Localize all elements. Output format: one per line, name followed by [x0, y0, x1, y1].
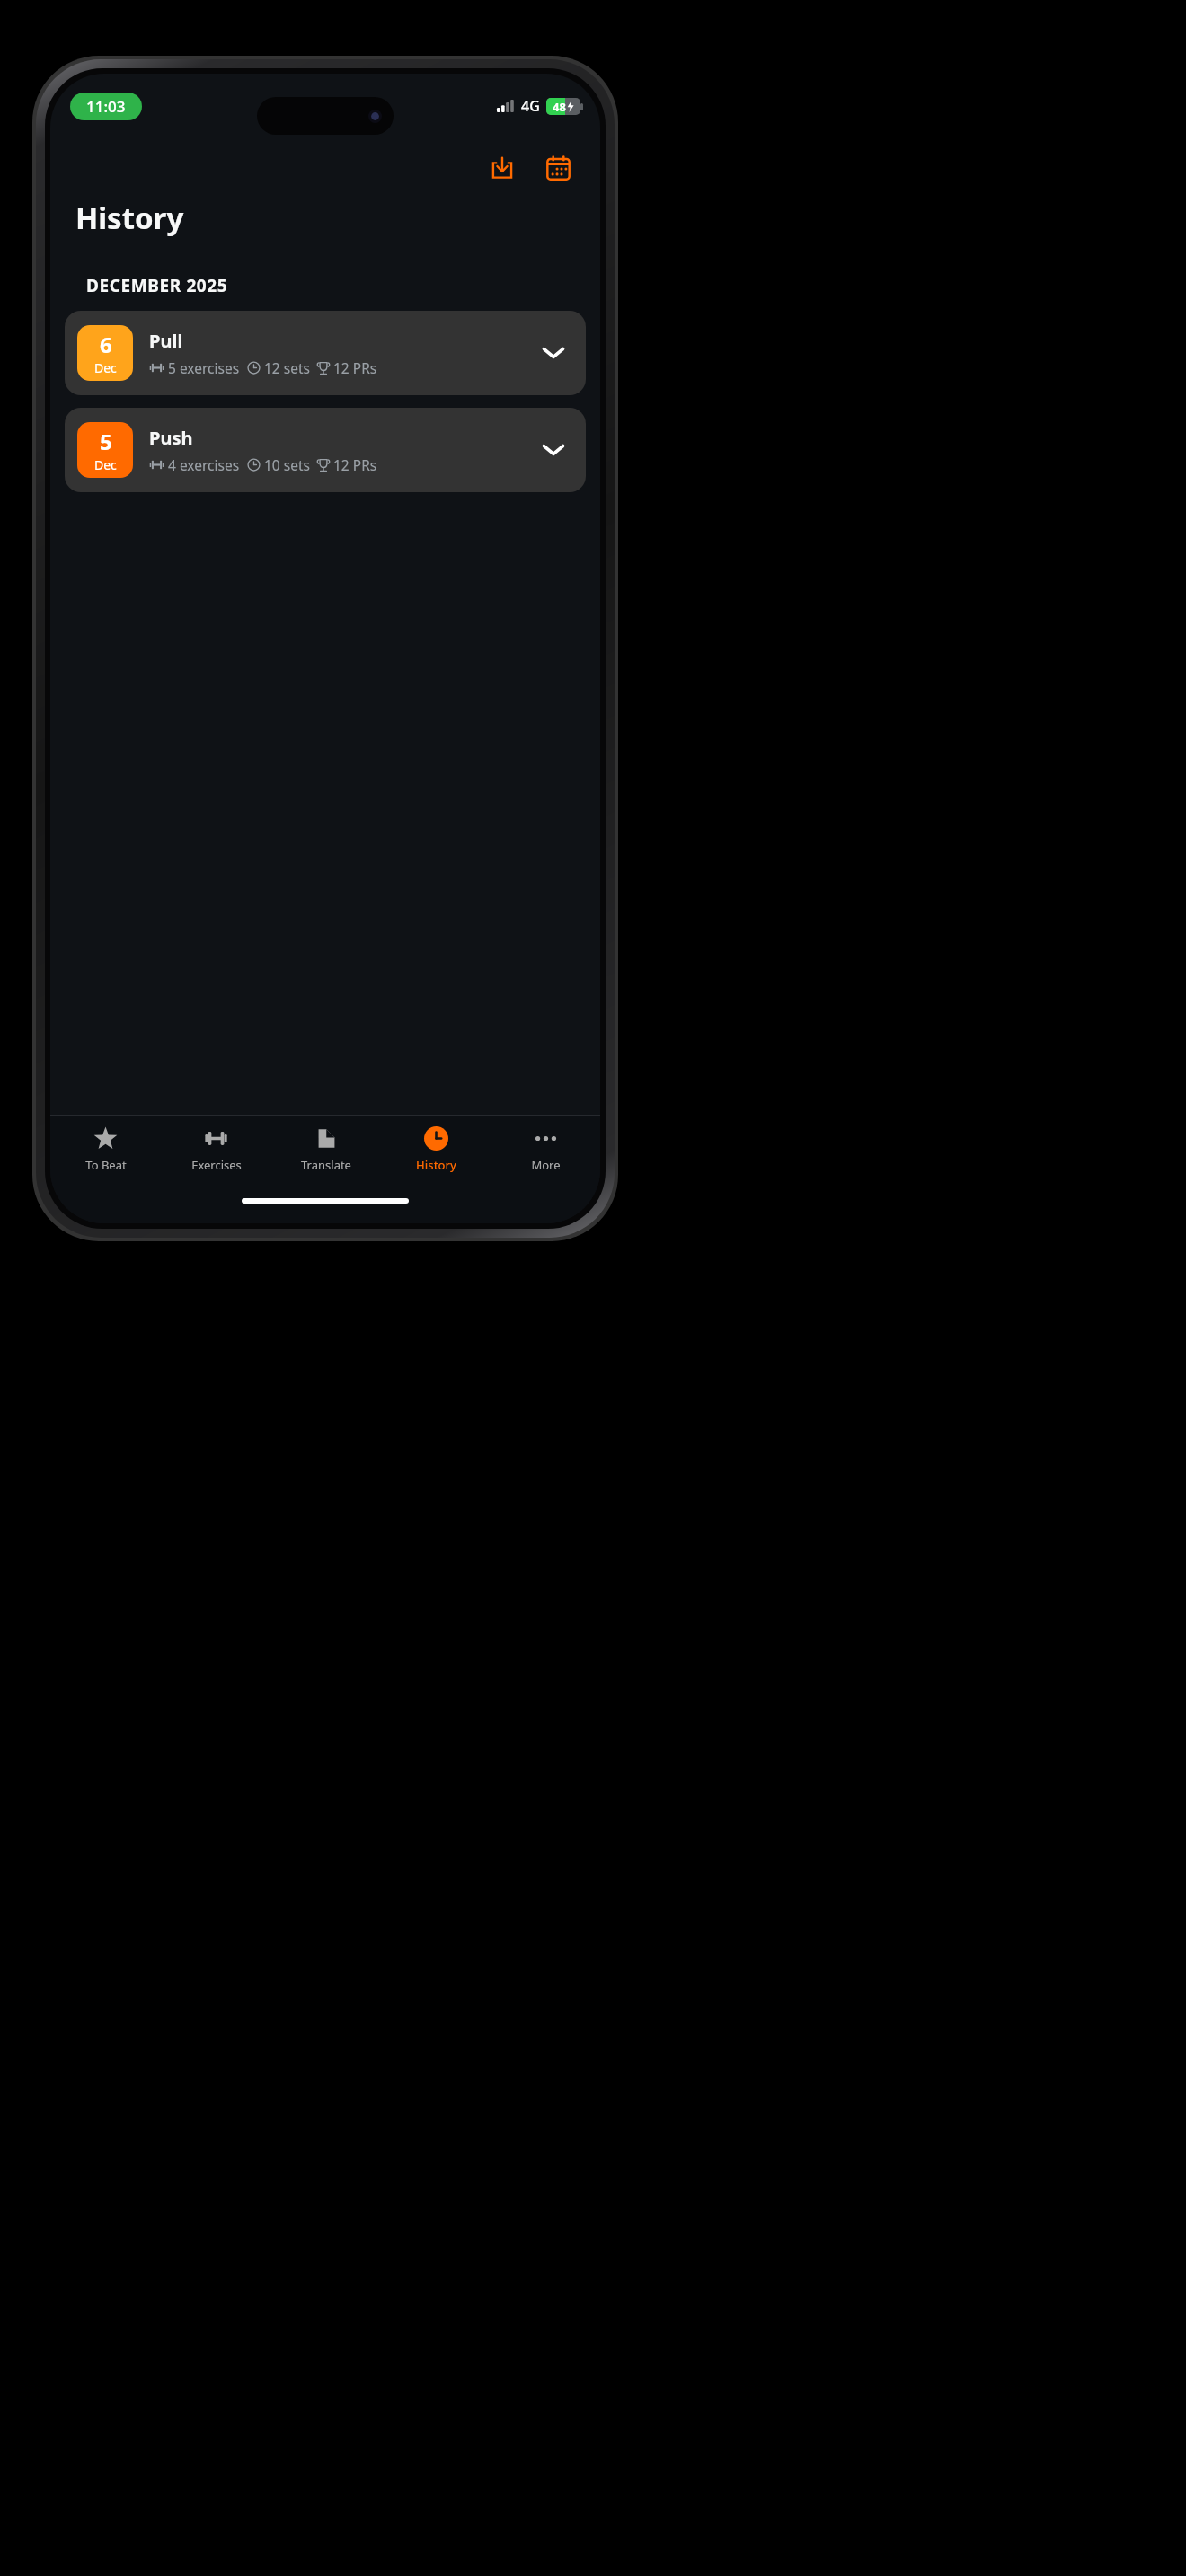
staticText: 5 exercises [168, 358, 240, 377]
staticText: 4G [521, 96, 540, 116]
staticText: History [416, 1157, 456, 1173]
button[interactable]: Translate [271, 1116, 381, 1191]
staticText: 5 [100, 427, 112, 456]
staticText: 48 [553, 99, 566, 115]
staticText: 4 exercises [168, 455, 240, 474]
staticText: Dec [94, 456, 117, 473]
staticText: 12 PRs [333, 358, 377, 377]
staticText: 10 sets [264, 455, 310, 474]
staticText: History [75, 198, 184, 238]
button[interactable]: Exercises [161, 1116, 271, 1191]
button[interactable]: 5 [65, 408, 586, 492]
staticText: Dec [94, 359, 117, 376]
staticText: 6 [100, 330, 112, 359]
button[interactable]: Import [478, 144, 527, 192]
staticText: Exercises [191, 1157, 242, 1173]
button[interactable]: History [381, 1116, 491, 1191]
button[interactable]: Calendar [534, 144, 582, 192]
button[interactable]: More [491, 1116, 600, 1191]
button[interactable]: Expand Push [534, 430, 573, 470]
staticText: Pull [149, 329, 183, 353]
staticText: Translate [301, 1157, 351, 1173]
button[interactable]: To Beat [50, 1116, 161, 1191]
button[interactable]: Expand Pull [534, 333, 573, 373]
button[interactable]: 6 [65, 311, 586, 395]
staticText: 11:03 [86, 96, 126, 117]
staticText: Push [149, 426, 193, 450]
staticText: 12 sets [264, 358, 310, 377]
staticText: 12 PRs [333, 455, 377, 474]
staticText: More [531, 1157, 561, 1173]
staticText: DECEMBER 2025 [86, 274, 228, 297]
staticText: To Beat [85, 1157, 127, 1173]
